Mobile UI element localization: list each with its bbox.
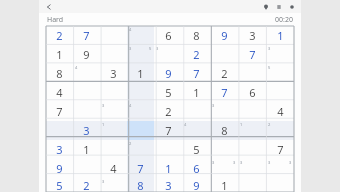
- staticText: 6: [249, 85, 256, 100]
- staticText: 7: [193, 66, 200, 81]
- button[interactable]: 6: [154, 26, 182, 45]
- button[interactable]: [266, 83, 294, 102]
- button[interactable]: 1: [73, 140, 100, 159]
- button[interactable]: 9: [46, 159, 73, 178]
- button[interactable]: 7: [210, 83, 238, 102]
- button[interactable]: [100, 45, 127, 64]
- button[interactable]: 3: [238, 159, 266, 178]
- staticText: 3: [56, 142, 63, 157]
- button[interactable]: [210, 45, 238, 64]
- button[interactable]: [238, 140, 266, 159]
- button[interactable]: [73, 83, 100, 102]
- button[interactable]: 1: [46, 45, 73, 64]
- button[interactable]: 4: [127, 102, 154, 121]
- button[interactable]: 6: [182, 159, 210, 178]
- button[interactable]: 4: [127, 26, 154, 45]
- button[interactable]: More options: [286, 1, 297, 12]
- staticText: 7: [249, 47, 256, 62]
- button[interactable]: 3: [266, 159, 294, 178]
- button[interactable]: 4: [100, 159, 127, 178]
- button[interactable]: 8: [127, 178, 154, 192]
- staticText: 9: [83, 47, 90, 62]
- button[interactable]: [238, 64, 266, 83]
- staticText: 3: [156, 46, 159, 51]
- button[interactable]: [100, 83, 127, 102]
- staticText: 3: [110, 66, 117, 81]
- button[interactable]: [238, 178, 266, 192]
- button[interactable]: [73, 159, 100, 178]
- button[interactable]: 1: [100, 121, 127, 140]
- button[interactable]: 9: [154, 64, 182, 83]
- button[interactable]: [46, 121, 73, 140]
- button[interactable]: 3: [100, 64, 127, 83]
- button[interactable]: 1: [127, 64, 154, 83]
- button[interactable]: 5: [182, 140, 210, 159]
- button[interactable]: 5: [154, 83, 182, 102]
- button[interactable]: 7: [238, 45, 266, 64]
- button[interactable]: 2: [154, 102, 182, 121]
- button[interactable]: 3: [154, 45, 182, 64]
- button[interactable]: 3: [100, 178, 127, 192]
- button[interactable]: 6: [238, 83, 266, 102]
- button[interactable]: 2: [182, 45, 210, 64]
- button[interactable]: 3: [127, 45, 154, 64]
- button[interactable]: [100, 140, 127, 159]
- button[interactable]: 3: [100, 102, 127, 121]
- button[interactable]: 7: [73, 26, 100, 45]
- button[interactable]: [238, 102, 266, 121]
- button[interactable]: 2: [210, 64, 238, 83]
- button[interactable]: 2: [127, 140, 154, 159]
- button[interactable]: 9: [182, 178, 210, 192]
- button[interactable]: 2: [46, 26, 73, 45]
- button[interactable]: 7: [127, 159, 154, 178]
- button[interactable]: 3: [154, 178, 182, 192]
- button[interactable]: [182, 102, 210, 121]
- button[interactable]: 4: [182, 121, 210, 140]
- staticText: 4: [184, 122, 187, 127]
- button[interactable]: 4: [73, 64, 100, 83]
- button[interactable]: Back: [43, 1, 54, 12]
- button[interactable]: 1: [210, 178, 238, 192]
- button[interactable]: 7: [182, 64, 210, 83]
- staticText: 1: [83, 142, 90, 157]
- button[interactable]: [127, 83, 154, 102]
- button[interactable]: 8: [182, 26, 210, 45]
- button[interactable]: 3: [73, 121, 100, 140]
- staticText: 4: [75, 65, 78, 70]
- button[interactable]: [100, 26, 127, 45]
- button[interactable]: Pause: [273, 1, 284, 12]
- staticText: 8: [221, 123, 228, 138]
- button[interactable]: 2: [266, 121, 294, 140]
- button[interactable]: 3: [266, 45, 294, 64]
- button[interactable]: 8: [210, 121, 238, 140]
- staticText: 4: [56, 85, 63, 100]
- staticText: 2: [56, 28, 63, 43]
- button[interactable]: 3: [46, 140, 73, 159]
- staticText: 1: [137, 66, 144, 81]
- button[interactable]: 3: [210, 159, 238, 178]
- button[interactable]: 1: [182, 83, 210, 102]
- button[interactable]: 9: [210, 26, 238, 45]
- button[interactable]: [266, 178, 294, 192]
- button[interactable]: 1: [238, 121, 266, 140]
- button[interactable]: 8: [46, 64, 73, 83]
- button[interactable]: 3: [210, 102, 238, 121]
- button[interactable]: 4: [266, 102, 294, 121]
- button[interactable]: 5: [46, 178, 73, 192]
- button[interactable]: 7: [154, 121, 182, 140]
- button[interactable]: 4: [46, 83, 73, 102]
- button[interactable]: [154, 140, 182, 159]
- button[interactable]: 1: [154, 159, 182, 178]
- button[interactable]: 5: [266, 64, 294, 83]
- button[interactable]: [73, 102, 100, 121]
- button[interactable]: 2: [73, 178, 100, 192]
- button[interactable]: 9: [73, 45, 100, 64]
- button[interactable]: 7: [46, 102, 73, 121]
- button[interactable]: [210, 140, 238, 159]
- staticText: 9: [165, 66, 172, 81]
- button[interactable]: 3: [238, 26, 266, 45]
- button[interactable]: 1: [266, 26, 294, 45]
- button[interactable]: Hint: [260, 1, 271, 12]
- button[interactable]: [127, 121, 154, 140]
- button[interactable]: 7: [266, 140, 294, 159]
